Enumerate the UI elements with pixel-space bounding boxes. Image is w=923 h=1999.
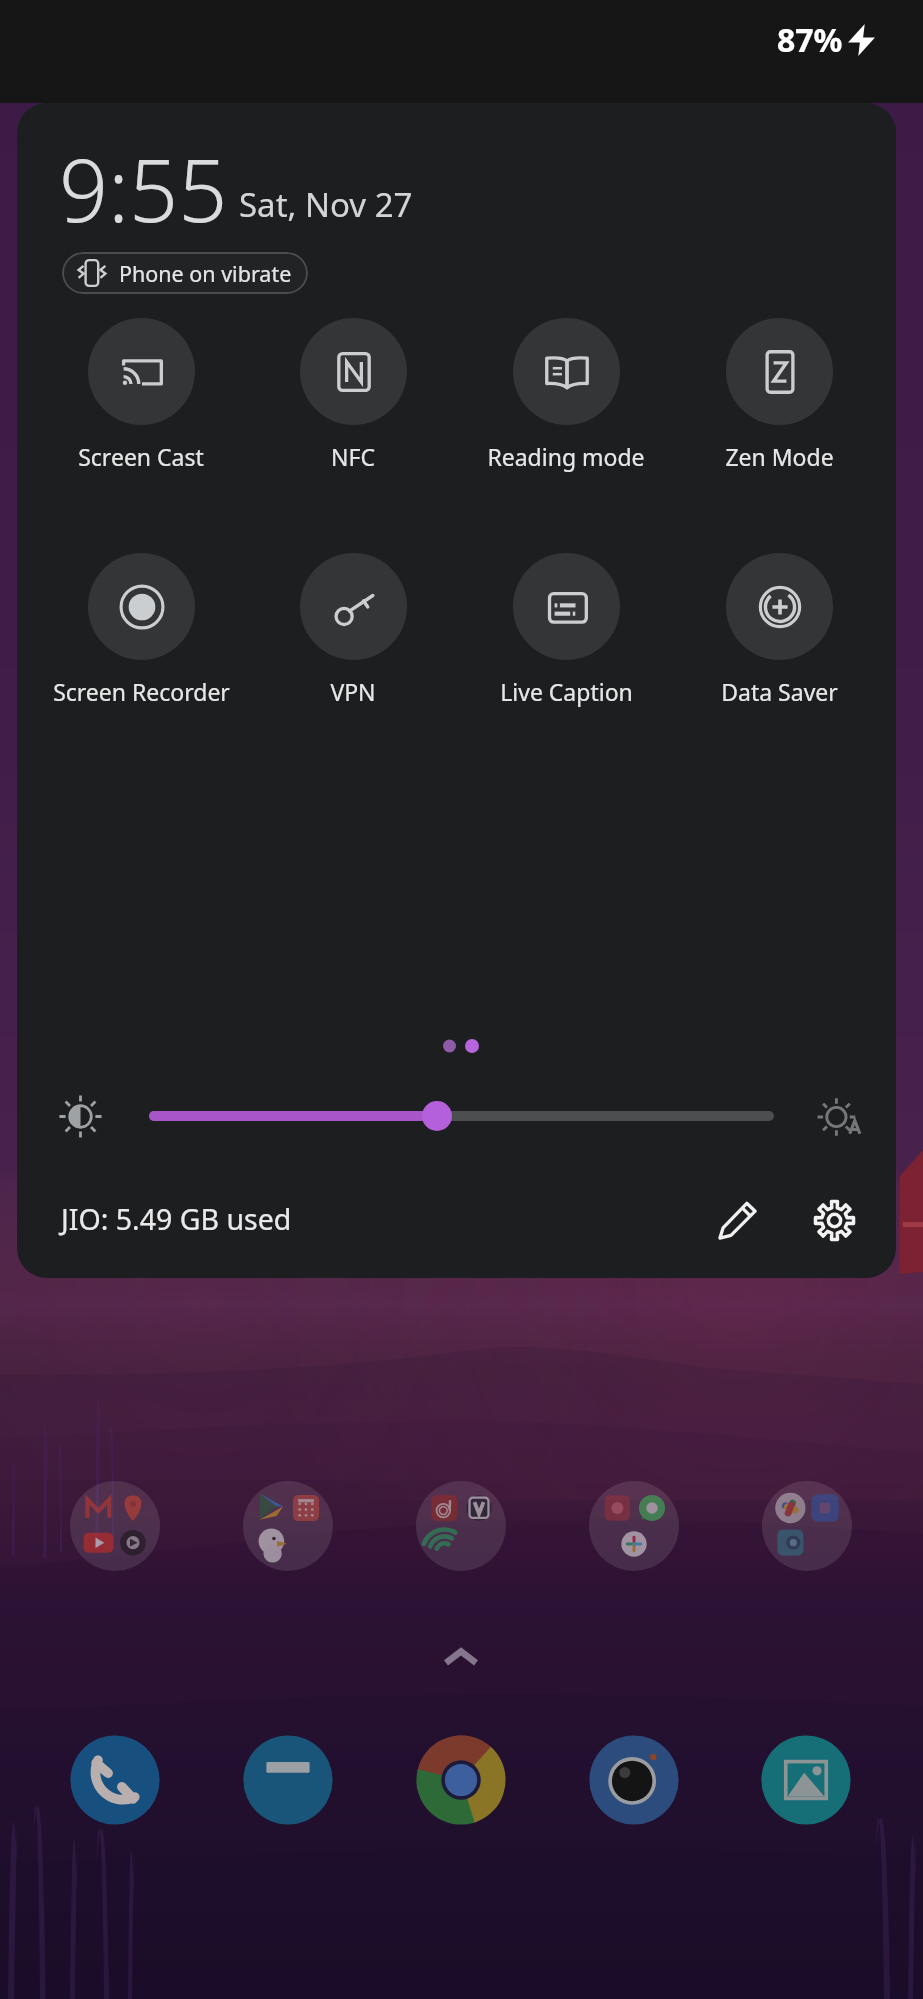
staticText: Screen Recorder [53, 676, 230, 707]
staticText: Data Saver [721, 676, 838, 707]
button[interactable]: Zen Mode [673, 318, 885, 472]
staticText: Phone on vibrate [119, 259, 292, 288]
button[interactable]: Messages [242, 1734, 334, 1826]
button[interactable]: Folder [762, 1481, 852, 1571]
button[interactable]: Chrome [415, 1734, 507, 1826]
staticText: Zen Mode [725, 441, 834, 472]
staticText: Live Caption [500, 676, 633, 707]
button[interactable]: Screen Cast [35, 318, 247, 472]
staticText: 87% [777, 18, 843, 62]
button[interactable]: Folder [70, 1481, 160, 1571]
staticText: Sat, Nov 27 [239, 182, 413, 227]
button[interactable]: Photos [760, 1734, 852, 1826]
button[interactable]: Open app drawer [430, 1636, 492, 1680]
staticText: VPN [330, 676, 376, 707]
button[interactable]: Camera [588, 1734, 680, 1826]
button[interactable]: Phone [69, 1734, 161, 1826]
staticText: Screen Cast [78, 441, 204, 472]
button[interactable]: Live Caption [460, 553, 672, 707]
button[interactable]: Settings [806, 1192, 862, 1248]
button[interactable]: Screen Recorder [35, 553, 247, 707]
button[interactable]: Data Saver [673, 553, 885, 707]
button[interactable]: Folder [243, 1481, 333, 1571]
button[interactable]: Folder [589, 1481, 679, 1571]
staticText: JIO: 5.49 GB used [61, 1200, 292, 1239]
button[interactable]: Reading mode [460, 318, 672, 472]
staticText: Reading mode [487, 441, 645, 472]
button[interactable]: NFC [247, 318, 459, 472]
staticText: NFC [331, 441, 375, 472]
button[interactable]: VPN [247, 553, 459, 707]
button[interactable]: Phone on vibrate [62, 252, 308, 294]
button[interactable]: Edit quick settings [710, 1192, 766, 1248]
staticText: 9:55 [59, 130, 228, 247]
button[interactable] [422, 1101, 452, 1131]
button[interactable]: Folder [416, 1481, 506, 1571]
